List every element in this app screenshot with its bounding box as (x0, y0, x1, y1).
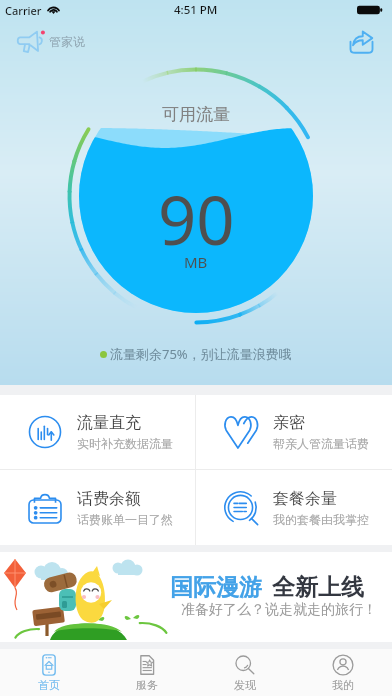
button[interactable]: 服务 (98, 649, 196, 696)
button[interactable]: 管家说 (12, 27, 90, 56)
staticText: 流量直充 (77, 413, 141, 433)
staticText: 发现 (234, 678, 256, 692)
button[interactable]: 套餐余量 (196, 470, 392, 545)
staticText: 套餐余量 (273, 489, 337, 509)
staticText: 全新上线 (272, 573, 364, 602)
staticText: 4:51 PM (174, 2, 218, 18)
staticText: 可用流量 (162, 104, 230, 125)
button[interactable]: 发现 (196, 649, 294, 696)
staticText: 我的 (332, 678, 354, 692)
button[interactable]: 国际漫游 (0, 552, 392, 642)
button[interactable]: 话费余额 (0, 470, 195, 545)
staticText: 首页 (38, 678, 60, 692)
staticText: 国际漫游 (170, 573, 262, 602)
staticText: MB (184, 252, 208, 272)
button[interactable]: 分享 (346, 26, 376, 56)
staticText: 准备好了么？说走就走的旅行！ (181, 601, 377, 619)
staticText: 实时补充数据流量 (77, 436, 173, 451)
button[interactable]: 流量直充 (0, 395, 195, 469)
staticText: Carrier (5, 3, 42, 18)
staticText: 流量剩余75%，别让流量浪费哦 (110, 345, 292, 363)
staticText: 话费余额 (77, 489, 141, 509)
staticText: 90 (158, 173, 235, 264)
staticText: 服务 (136, 678, 158, 692)
button[interactable]: 我的 (294, 649, 392, 696)
staticText: 我的套餐由我掌控 (273, 512, 369, 527)
staticText: 管家说 (49, 34, 85, 49)
staticText: 话费账单一目了然 (77, 512, 173, 527)
staticText: 帮亲人管流量话费 (273, 436, 369, 451)
button[interactable]: 亲密 (196, 395, 392, 469)
button[interactable]: 首页 (0, 649, 98, 696)
staticText: 亲密 (273, 413, 305, 433)
